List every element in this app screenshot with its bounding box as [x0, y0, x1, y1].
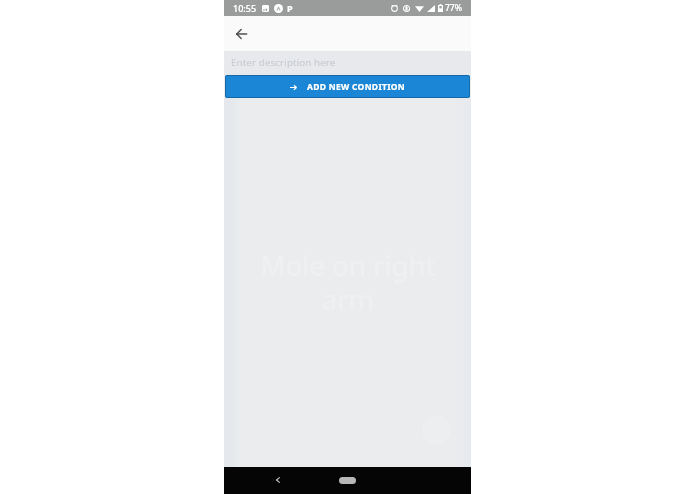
button[interactable]: Enter description here: [224, 51, 471, 75]
button[interactable]: Back: [268, 470, 288, 490]
staticText: P: [287, 2, 293, 14]
button[interactable]: Home: [339, 477, 356, 484]
staticText: ADD NEW CONDITION: [307, 81, 406, 93]
staticText: Enter description here: [231, 56, 336, 69]
staticText: 10:55: [233, 2, 257, 14]
button[interactable]: ADD NEW CONDITION: [225, 75, 470, 98]
button[interactable]: Back: [229, 22, 253, 46]
staticText: 77%: [445, 2, 462, 14]
